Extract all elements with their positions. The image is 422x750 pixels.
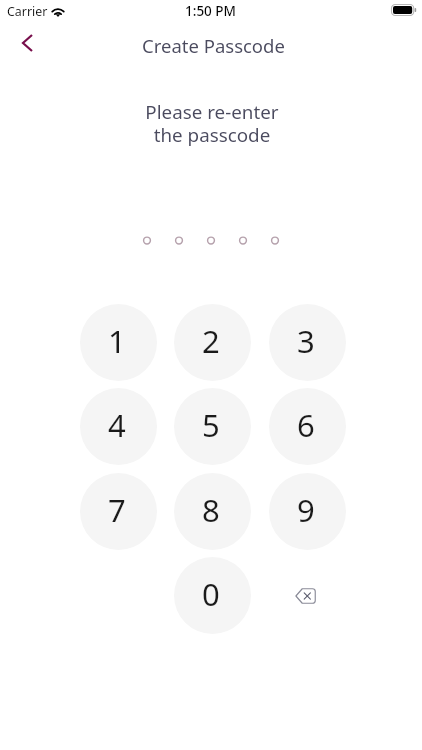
staticText: Carrier — [7, 3, 48, 20]
button[interactable]: 3 — [269, 304, 346, 381]
button[interactable]: 9 — [269, 473, 346, 550]
staticText: 1:50 PM — [185, 2, 236, 20]
button[interactable]: 1 — [80, 304, 157, 381]
button[interactable]: 0 — [174, 557, 251, 634]
staticText: 6 — [297, 404, 315, 446]
button[interactable]: 7 — [80, 473, 157, 550]
button[interactable]: 6 — [269, 388, 346, 465]
button[interactable]: Back — [6, 22, 49, 64]
staticText: 1 — [108, 320, 126, 362]
staticText: 3 — [297, 320, 315, 362]
button[interactable]: 2 — [174, 304, 251, 381]
staticText: 5 — [202, 404, 220, 446]
button[interactable]: 4 — [80, 388, 157, 465]
staticText: 0 — [202, 573, 220, 615]
staticText: 2 — [202, 320, 220, 362]
button[interactable]: 5 — [174, 388, 251, 465]
staticText: 9 — [297, 489, 315, 531]
staticText: 4 — [108, 404, 126, 446]
staticText: Please re-enter the passcode — [1, 99, 422, 147]
staticText: 8 — [202, 489, 220, 531]
staticText: Create Passcode — [142, 33, 285, 58]
button[interactable]: 8 — [174, 473, 251, 550]
button[interactable]: Delete — [269, 557, 346, 634]
staticText: 7 — [108, 489, 126, 531]
